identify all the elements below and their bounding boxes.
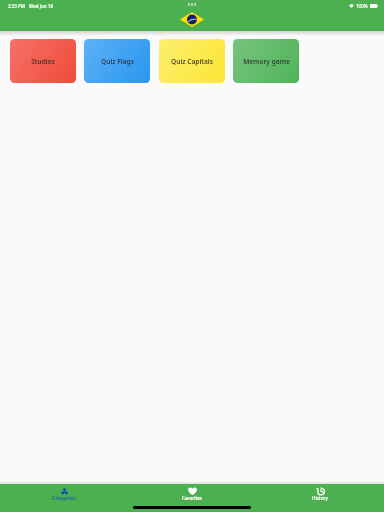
button[interactable]: Favorites: [128, 484, 256, 512]
button[interactable]: Quiz Flags: [84, 39, 150, 83]
staticText: Favorites: [182, 495, 203, 501]
button[interactable]: Studies: [10, 39, 76, 83]
staticText: Studies: [31, 57, 55, 66]
staticText: Memory game: [243, 57, 290, 66]
staticText: Quiz Flags: [101, 57, 134, 66]
staticText: Wed Jun 18: [29, 3, 53, 9]
button[interactable]: History: [256, 484, 384, 512]
staticText: Categories: [52, 495, 76, 501]
button[interactable]: Brazil flag, change country: [180, 12, 204, 27]
staticText: 100%: [356, 3, 368, 9]
button[interactable]: Quiz Capitals: [159, 39, 225, 83]
button[interactable]: Memory game: [233, 39, 299, 83]
staticText: Quiz Capitals: [171, 57, 213, 66]
staticText: History: [312, 495, 328, 501]
button[interactable]: Categories: [0, 484, 128, 512]
staticText: 2:33 PM: [8, 3, 25, 9]
